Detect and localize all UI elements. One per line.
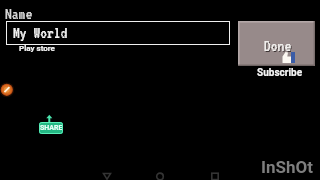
staticText: Done xyxy=(264,37,292,54)
button[interactable]: Subscribe xyxy=(241,67,318,79)
button[interactable]: My World xyxy=(6,21,230,45)
button[interactable]: Home xyxy=(147,166,175,180)
staticText: Play store xyxy=(19,44,55,53)
staticText: InShOt xyxy=(261,157,313,177)
staticText: My World xyxy=(13,24,68,41)
staticText: SHARE xyxy=(40,124,63,132)
button[interactable]: Recent apps xyxy=(202,166,230,180)
button[interactable]: Edit xyxy=(0,83,14,97)
button[interactable]: SHARE xyxy=(37,114,65,136)
button[interactable]: Done xyxy=(238,21,315,66)
staticText: Done xyxy=(265,38,293,55)
staticText: Subscribe xyxy=(257,67,303,79)
staticText: Name xyxy=(5,5,33,22)
button[interactable]: Back xyxy=(95,166,125,180)
